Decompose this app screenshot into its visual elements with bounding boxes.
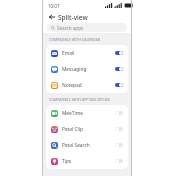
- button[interactable]: Back: [47, 12, 57, 22]
- staticText: Search apps: [57, 25, 84, 31]
- staticText: Petal Clip: [62, 126, 83, 133]
- staticText: COMPATIBLE WITH APP MULTIPLIER: [49, 97, 110, 102]
- button[interactable]: Switch off: [115, 159, 123, 163]
- button[interactable]: Switch on: [115, 51, 123, 55]
- staticText: Split-view: [58, 13, 88, 22]
- button[interactable]: MeeTime: [46, 105, 128, 121]
- button[interactable]: Tips: [46, 153, 128, 169]
- staticText: Notepad: [62, 82, 82, 89]
- button[interactable]: Switch off: [115, 127, 123, 131]
- staticText: Messaging: [62, 66, 87, 73]
- staticText: Tips: [62, 158, 72, 165]
- button[interactable]: Email: [46, 45, 128, 61]
- button[interactable]: Switch off: [115, 111, 123, 115]
- staticText: COMPATIBLE WITH CALENDAR: [49, 37, 101, 42]
- staticText: MeeTime: [62, 110, 83, 117]
- button[interactable]: Petal Clip: [46, 121, 128, 137]
- button[interactable]: Switch on: [115, 67, 123, 71]
- staticText: Email: [62, 50, 75, 57]
- staticText: Petal Search: [62, 142, 90, 149]
- button[interactable]: Switch off: [115, 143, 123, 147]
- staticText: 10:07: [48, 3, 60, 9]
- button[interactable]: Messaging: [46, 61, 128, 77]
- button[interactable]: Switch on: [115, 83, 123, 87]
- button[interactable]: Petal Search: [46, 137, 128, 153]
- button[interactable]: Notepad: [46, 77, 128, 93]
- button[interactable]: Search apps: [47, 23, 127, 32]
